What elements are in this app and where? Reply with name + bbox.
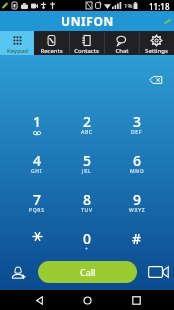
- staticText: Recents: [40, 47, 63, 55]
- button[interactable]: 0: [62, 224, 112, 263]
- staticText: WXYZ: [129, 207, 146, 214]
- button[interactable]: 3: [112, 107, 162, 146]
- staticText: +: [85, 246, 89, 253]
- button[interactable]: Recents: [34, 31, 69, 55]
- button[interactable]: Backspace: [143, 68, 169, 92]
- staticText: #: [132, 229, 142, 248]
- button[interactable]: [12, 224, 62, 263]
- staticText: 4: [33, 151, 42, 170]
- staticText: Call: [80, 266, 96, 278]
- staticText: 7: [33, 190, 42, 209]
- button[interactable]: #: [112, 224, 162, 263]
- staticText: GHI: [31, 168, 43, 175]
- staticText: JKL: [82, 168, 92, 175]
- staticText: DEF: [131, 129, 143, 136]
- staticText: Contacts: [74, 47, 99, 55]
- other: Link: [164, 18, 171, 25]
- staticText: 1: [33, 112, 42, 131]
- staticText: ABC: [81, 129, 93, 136]
- button[interactable]: 8: [62, 185, 112, 224]
- button[interactable]: Keypad: [0, 31, 34, 55]
- button[interactable]: Home: [77, 290, 97, 310]
- button[interactable]: 5: [62, 146, 112, 185]
- button[interactable]: 1: [12, 107, 62, 146]
- staticText: 5: [83, 151, 92, 170]
- button[interactable]: 9: [112, 185, 162, 224]
- button[interactable]: Video call: [146, 260, 170, 284]
- staticText: Settings: [145, 47, 168, 55]
- staticText: Keypad: [7, 47, 28, 55]
- staticText: 6: [133, 151, 142, 170]
- button[interactable]: 6: [112, 146, 162, 185]
- staticText: 0: [83, 229, 92, 248]
- button[interactable]: Contacts: [69, 31, 104, 55]
- staticText: 2: [83, 112, 92, 131]
- button[interactable]: Recent apps: [126, 290, 146, 310]
- button[interactable]: 2: [62, 107, 112, 146]
- button[interactable]: 7: [12, 185, 62, 224]
- button[interactable]: 4: [12, 146, 62, 185]
- staticText: 1%: [124, 2, 133, 10]
- staticText: 9: [133, 190, 142, 209]
- staticText: 3: [133, 112, 142, 131]
- button[interactable]: Add contact: [7, 260, 31, 284]
- staticText: 8: [83, 190, 92, 209]
- staticText: UNIFON: [61, 13, 114, 29]
- staticText: Chat: [115, 47, 129, 55]
- button[interactable]: Call: [38, 261, 137, 283]
- button[interactable]: Back: [29, 290, 49, 310]
- button[interactable]: Chat: [104, 31, 139, 55]
- button[interactable]: Settings: [139, 31, 174, 55]
- staticText: MNO: [130, 168, 145, 175]
- staticText: PQRS: [29, 207, 45, 214]
- staticText: 11:18: [149, 1, 170, 12]
- staticText: TUV: [81, 207, 93, 214]
